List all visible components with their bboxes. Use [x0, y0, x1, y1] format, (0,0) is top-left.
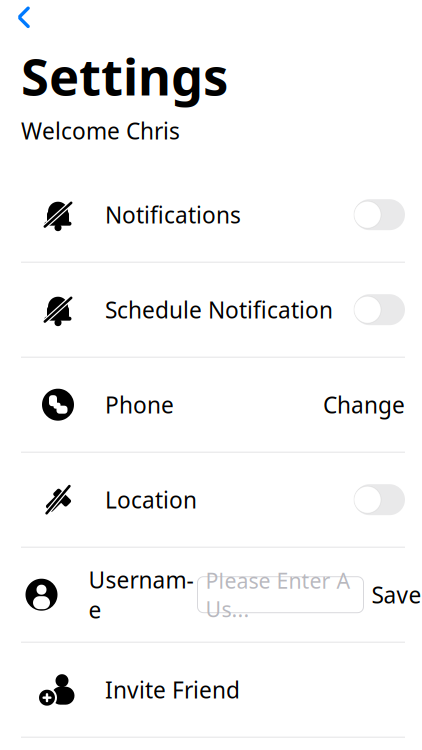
button[interactable]: Invite Friend: [0, 643, 422, 737]
staticText: Please Enter A Us...: [205, 566, 350, 623]
staticText: Notifications: [105, 200, 241, 230]
staticText: Save: [371, 580, 421, 610]
button[interactable]: Schedule Notification: [0, 263, 422, 357]
button[interactable]: Save: [363, 580, 422, 610]
staticText: Location: [105, 485, 197, 515]
staticText: Username: [88, 565, 193, 625]
staticText: Schedule Notification: [105, 295, 333, 325]
button[interactable]: Please Enter A Us...: [197, 577, 363, 613]
staticText: Phone: [105, 390, 174, 420]
button[interactable]: Location: [0, 453, 422, 547]
button[interactable]: Phone: [0, 358, 422, 452]
button[interactable]: Back: [2, 0, 46, 34]
staticText: Change: [323, 390, 405, 420]
staticText: Settings: [21, 42, 228, 110]
staticText: Invite Friend: [105, 675, 240, 705]
staticText: Welcome Chris: [21, 116, 180, 146]
button[interactable]: Notifications: [0, 168, 422, 262]
